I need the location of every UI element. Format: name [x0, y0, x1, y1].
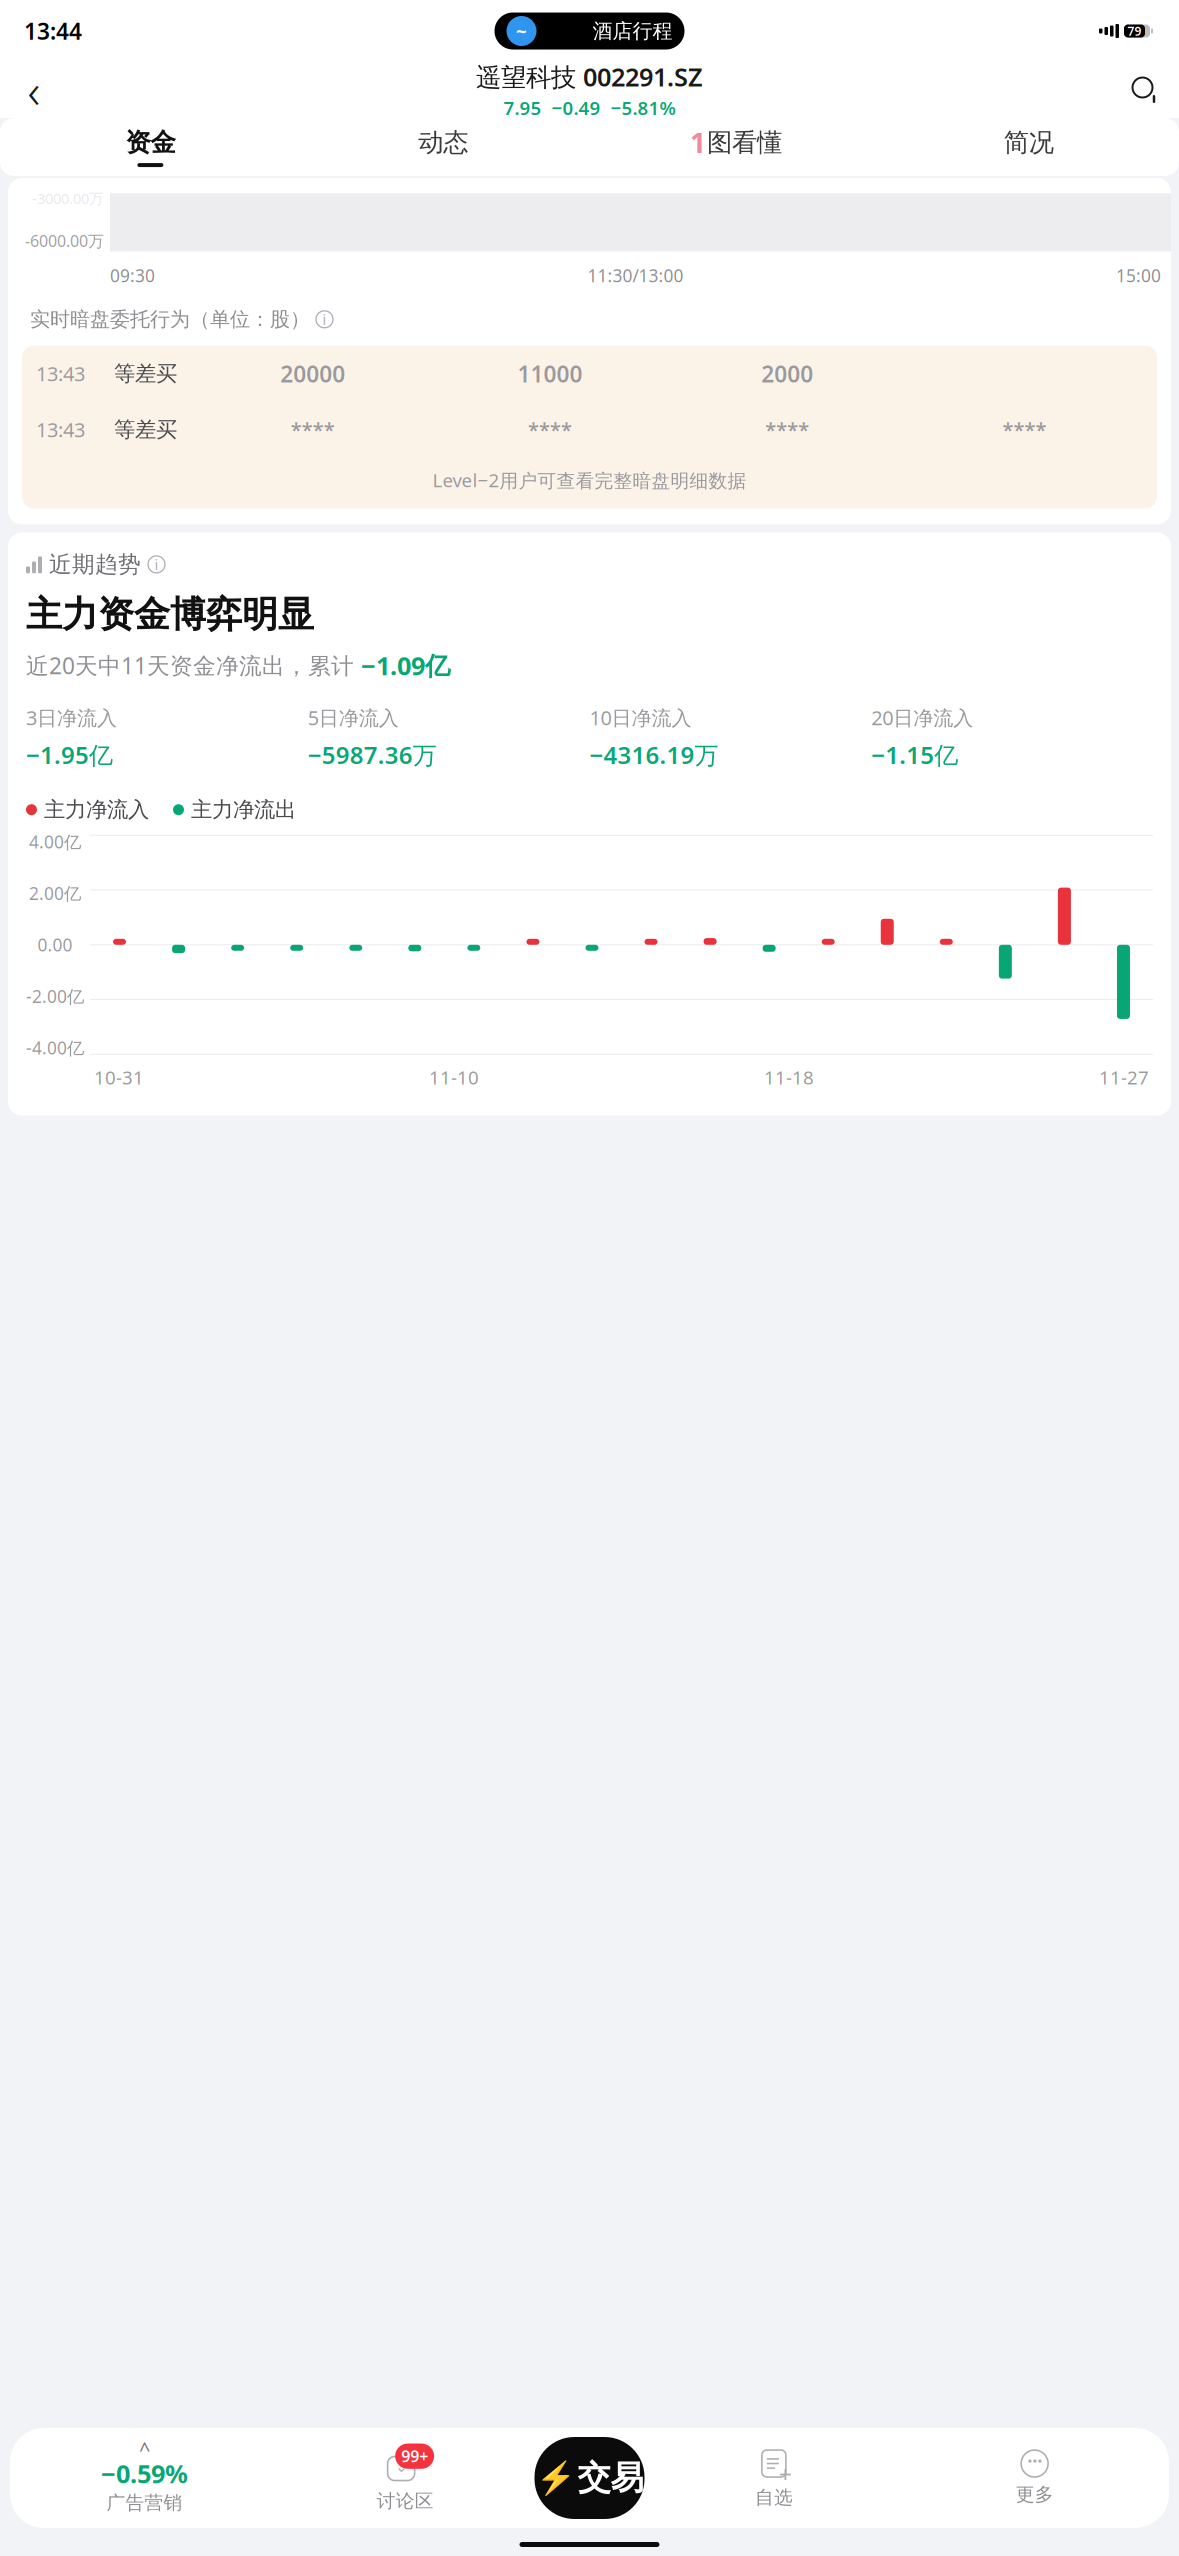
staticText: 13:43	[36, 416, 85, 443]
staticText: 等差买	[114, 360, 177, 387]
staticText: 主力净流出	[191, 797, 296, 823]
staticText: 3日净流入	[26, 704, 117, 731]
staticText: 11-10	[429, 1065, 479, 1090]
button[interactable]: 资金	[4, 118, 297, 176]
staticText: i	[322, 310, 326, 329]
staticText: 图看懂	[707, 127, 782, 158]
staticText: 主力净流入	[44, 797, 149, 823]
staticText: 15:00	[1116, 264, 1161, 287]
staticText: ****	[765, 416, 809, 443]
button[interactable]: 简况	[882, 118, 1175, 176]
button[interactable]: 1	[589, 118, 882, 176]
staticText: ****	[528, 416, 572, 443]
staticText: 4.00亿	[29, 830, 81, 853]
staticText: ****	[291, 416, 335, 443]
staticText: -2.00亿	[26, 985, 84, 1008]
staticText: 20日净流入	[871, 704, 973, 731]
staticText: -6000.00万	[25, 230, 104, 251]
button[interactable]: 动态	[297, 118, 590, 176]
staticText: ⌄	[395, 2457, 408, 2476]
staticText: 5日净流入	[308, 704, 399, 731]
staticText: −5987.36万	[308, 739, 437, 771]
staticText: 13:43	[36, 360, 85, 387]
staticText: -3000.00万	[32, 189, 104, 208]
staticText: 自选	[755, 2486, 793, 2509]
staticText: 11-27	[1099, 1065, 1149, 1090]
staticText: 简况	[1004, 127, 1054, 158]
staticText: i	[154, 555, 158, 574]
staticText: 交易	[577, 2457, 643, 2498]
staticText: 0.00	[37, 933, 72, 956]
staticText: 更多	[1016, 2483, 1054, 2506]
button[interactable]: ^	[14, 2428, 275, 2528]
staticText: 实时暗盘委托行为（单位：股）	[30, 307, 310, 332]
staticText: 讨论区	[377, 2489, 434, 2512]
staticText: 10-31	[94, 1065, 144, 1090]
staticText: -4.00亿	[26, 1036, 84, 1059]
staticText: ‹	[27, 58, 40, 122]
staticText: 7.95 −0.49 −5.81%	[503, 95, 675, 120]
button[interactable]: ⚡	[534, 2437, 644, 2519]
staticText: 近期趋势	[49, 550, 141, 578]
button[interactable]: 自选	[643, 2428, 904, 2528]
staticText: 近20天中11天资金净流出，累计	[26, 650, 361, 680]
staticText: 遥望科技 002291.SZ	[476, 60, 703, 93]
staticText: 主力资金博弈明显	[26, 592, 314, 636]
staticText: 11-18	[764, 1065, 814, 1090]
staticText: 79	[1127, 23, 1141, 39]
button[interactable]: Back	[8, 64, 60, 116]
staticText: ⚡	[535, 2460, 575, 2496]
staticText: Level−2用户可查看完整暗盘明细数据	[432, 468, 746, 492]
staticText: −1.15亿	[871, 739, 958, 771]
staticText: ···	[1027, 2448, 1042, 2473]
staticText: ~	[516, 19, 527, 43]
staticText: 11:30/13:00	[587, 264, 683, 287]
button[interactable]: ⌄	[275, 2428, 536, 2528]
staticText: 广告营销	[106, 2491, 182, 2514]
staticText: −1.95亿	[26, 739, 113, 771]
staticText: 酒店行程	[592, 19, 672, 43]
staticText: ****	[1002, 416, 1046, 443]
button[interactable]: Search	[1119, 64, 1171, 116]
staticText: −4316.19万	[589, 739, 718, 771]
staticText: 2000	[761, 358, 813, 389]
staticText: 11000	[517, 358, 582, 389]
staticText: ^	[139, 2435, 150, 2462]
staticText: 99+	[401, 2445, 428, 2467]
staticText: 动态	[418, 127, 468, 158]
staticText: −0.59%	[101, 2457, 188, 2490]
staticText: 09:30	[110, 264, 155, 287]
button[interactable]: ···	[904, 2428, 1165, 2528]
staticText: 1	[690, 124, 706, 161]
staticText: 2.00亿	[29, 882, 81, 905]
staticText: 13:44	[24, 16, 82, 46]
staticText: −1.09亿	[361, 648, 450, 682]
staticText: 资金	[125, 127, 175, 158]
staticText: 等差买	[114, 416, 177, 443]
staticText: 20000	[280, 358, 345, 389]
staticText: 10日净流入	[589, 704, 691, 731]
